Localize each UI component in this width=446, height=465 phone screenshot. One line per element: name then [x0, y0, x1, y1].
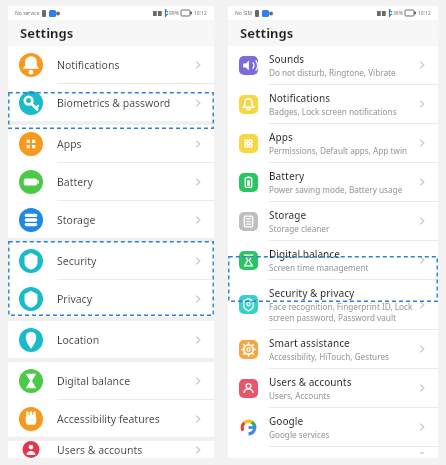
staticText: Digital balance — [57, 374, 131, 388]
staticText: Security & privacy — [269, 286, 355, 300]
staticText: Notifications — [269, 91, 331, 105]
staticText: Power saving mode, Battery usage — [269, 184, 403, 195]
staticText: 36% — [393, 10, 403, 17]
staticText: Users, Accounts — [269, 390, 331, 401]
button[interactable]: Accessibility features — [8, 400, 214, 437]
staticText: Accessibility, HiTouch, Gestures — [269, 351, 389, 362]
button[interactable]: Biometrics & password — [8, 84, 214, 121]
staticText: Digital balance — [269, 247, 341, 261]
staticText: Do not disturb, Ringtone, Vibrate — [269, 67, 396, 78]
staticText: Apps — [57, 137, 82, 151]
staticText: Notifications — [57, 58, 120, 72]
button[interactable]: Google — [228, 408, 438, 447]
button[interactable]: Smart assistance — [228, 330, 438, 369]
button[interactable]: Users & accounts — [228, 369, 438, 408]
button[interactable]: Sounds — [228, 46, 438, 85]
button[interactable]: Apps — [228, 124, 438, 163]
button[interactable]: Storage — [228, 202, 438, 241]
staticText: Apps — [269, 130, 293, 144]
staticText: Google services — [269, 429, 330, 440]
staticText: Privacy — [57, 292, 93, 306]
button[interactable]: Notifications — [228, 85, 438, 124]
staticText: Storage — [57, 213, 96, 227]
button[interactable]: Digital balance — [8, 362, 214, 400]
staticText: Users & accounts — [269, 375, 352, 389]
staticText: Users & accounts — [57, 443, 143, 457]
button[interactable]: Notifications — [8, 46, 214, 84]
staticText: 10:12 — [418, 10, 431, 17]
staticText: 10:12 — [194, 10, 207, 17]
staticText: Settings — [240, 24, 294, 42]
staticText: screen password, Password vault — [269, 312, 396, 323]
staticText: No SIM — [235, 10, 253, 17]
button[interactable]: Battery — [228, 163, 438, 202]
button[interactable]: Storage — [8, 201, 214, 238]
staticText: Storage cleaner — [269, 223, 330, 234]
staticText: Face recognition, Fingerprint ID, Lock — [269, 301, 413, 312]
staticText: Sounds — [269, 52, 305, 66]
staticText: Battery — [269, 169, 305, 183]
button[interactable]: Battery — [8, 163, 214, 201]
button[interactable]: Privacy — [8, 280, 214, 317]
staticText: Storage — [269, 208, 307, 222]
staticText: Permissions, Default apps, App twin — [269, 145, 408, 156]
staticText: Location — [57, 333, 100, 347]
staticText: Battery — [57, 175, 93, 189]
button[interactable]: Security — [8, 242, 214, 280]
staticText: Google — [269, 414, 304, 428]
staticText: No service — [15, 10, 40, 17]
staticText: Screen time management — [269, 262, 369, 273]
staticText: Accessibility features — [57, 412, 160, 426]
staticText: Biometrics & password — [57, 96, 171, 110]
staticText: Badges, Lock screen notifications — [269, 106, 397, 117]
button[interactable]: Users & accounts — [8, 441, 214, 458]
staticText: 89% — [169, 10, 179, 17]
button[interactable]: Apps — [8, 125, 214, 163]
staticText: Security — [57, 254, 97, 268]
staticText: Smart assistance — [269, 336, 350, 350]
button[interactable]: Location — [8, 321, 214, 358]
button[interactable]: Digital balance — [228, 241, 438, 280]
button[interactable]: Security & privacy — [228, 280, 438, 330]
staticText: Settings — [20, 24, 74, 42]
